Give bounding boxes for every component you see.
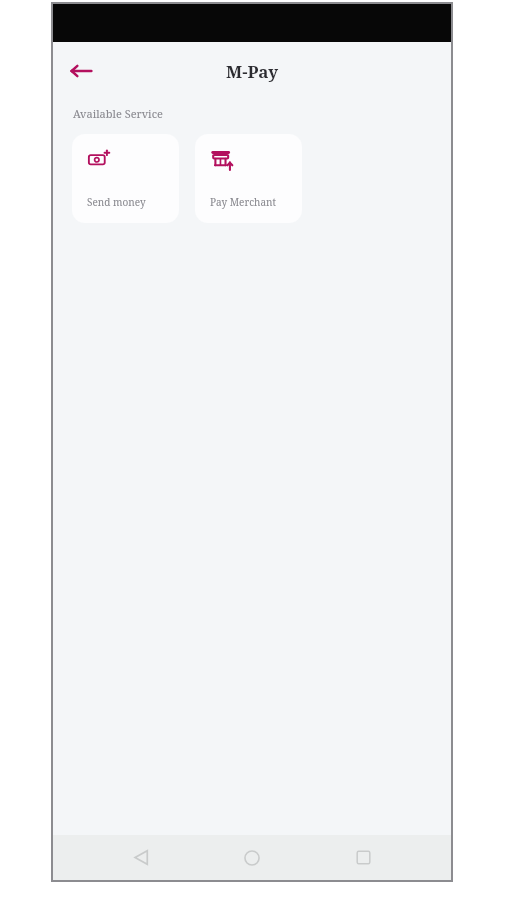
button[interactable]: Pay Merchant — [195, 134, 302, 223]
staticText: M-Pay — [226, 60, 279, 83]
button[interactable]: Send money — [72, 134, 179, 223]
button[interactable]: Home — [229, 835, 275, 880]
staticText: Pay Merchant — [210, 195, 277, 209]
staticText: Available Service — [73, 106, 163, 121]
button[interactable]: Back — [59, 49, 103, 93]
button[interactable]: Back — [118, 835, 164, 880]
staticText: Send money — [87, 195, 146, 209]
button[interactable]: Recents — [340, 835, 386, 880]
